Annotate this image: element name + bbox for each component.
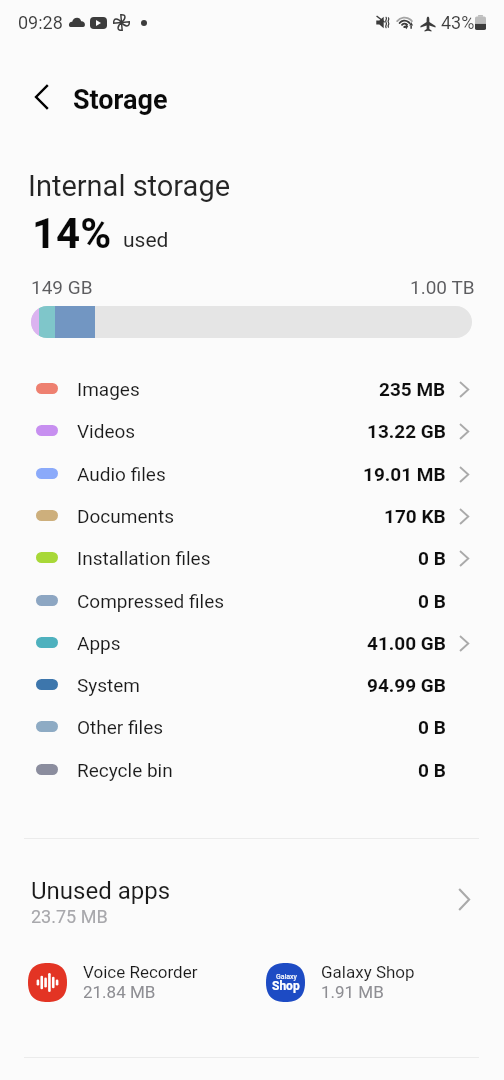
staticText: Installation files bbox=[77, 547, 211, 569]
button[interactable]: Videos bbox=[0, 411, 504, 453]
staticText: Shop bbox=[272, 979, 300, 993]
staticText: 14% bbox=[32, 209, 112, 258]
staticText: 21.84 MB bbox=[83, 982, 156, 1002]
staticText: Unused apps bbox=[31, 877, 171, 905]
staticText: 235 MB bbox=[379, 378, 446, 400]
button[interactable]: Voice Recorder bbox=[28, 960, 198, 1004]
staticText: 94.99 GB bbox=[367, 674, 446, 696]
staticText: System bbox=[77, 674, 141, 696]
button[interactable]: Compressed files bbox=[0, 581, 504, 623]
button[interactable]: Audio files bbox=[0, 454, 504, 496]
button[interactable]: Documents bbox=[0, 496, 504, 538]
staticText: 13.22 GB bbox=[367, 420, 446, 442]
button[interactable]: Recycle bin bbox=[0, 750, 504, 792]
staticText: 0 B bbox=[418, 759, 446, 781]
staticText: 1.91 MB bbox=[321, 982, 384, 1002]
staticText: Images bbox=[77, 378, 140, 400]
button[interactable]: Galaxy bbox=[266, 960, 415, 1004]
staticText: Galaxy Shop bbox=[321, 962, 415, 982]
button[interactable]: Images bbox=[0, 369, 504, 411]
staticText: 43% bbox=[441, 12, 475, 33]
staticText: used bbox=[123, 228, 169, 253]
button[interactable]: System bbox=[0, 665, 504, 707]
staticText: 0 B bbox=[418, 547, 446, 569]
staticText: 0 B bbox=[418, 590, 446, 612]
staticText: Audio files bbox=[77, 463, 166, 485]
staticText: 1.00 TB bbox=[410, 276, 475, 298]
button[interactable]: Other files bbox=[0, 707, 504, 749]
staticText: 0 B bbox=[418, 716, 446, 738]
staticText: 170 KB bbox=[384, 505, 446, 527]
staticText: 23.75 MB bbox=[31, 906, 108, 927]
staticText: 149 GB bbox=[31, 276, 93, 298]
staticText: 41.00 GB bbox=[367, 632, 446, 654]
staticText: 09:28 bbox=[18, 12, 63, 33]
staticText: Voice Recorder bbox=[83, 962, 198, 982]
staticText: Apps bbox=[77, 632, 121, 654]
button[interactable]: Unused apps bbox=[0, 858, 504, 940]
button[interactable]: Installation files bbox=[0, 538, 504, 580]
staticText: 19.01 MB bbox=[363, 463, 446, 485]
button[interactable]: Apps bbox=[0, 623, 504, 665]
staticText: Storage bbox=[73, 84, 168, 116]
staticText: Compressed files bbox=[77, 590, 225, 612]
staticText: Internal storage bbox=[28, 169, 231, 203]
button[interactable]: Back bbox=[18, 77, 62, 121]
staticText: Galaxy bbox=[276, 973, 297, 981]
staticText: Documents bbox=[77, 505, 174, 527]
staticText: Other files bbox=[77, 716, 164, 738]
staticText: Videos bbox=[77, 420, 136, 442]
staticText: Recycle bin bbox=[77, 759, 173, 781]
